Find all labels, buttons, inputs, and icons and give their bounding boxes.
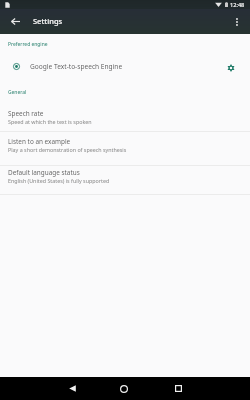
button[interactable]: More options <box>228 9 246 34</box>
button[interactable]: Default language status <box>0 165 250 193</box>
button[interactable]: Navigate up <box>3 9 27 34</box>
staticText: Preferred engine <box>8 41 48 48</box>
staticText: Speed at which the text is spoken <box>8 118 92 125</box>
button[interactable]: Engine settings <box>222 59 239 76</box>
staticText: Default language status <box>8 168 80 177</box>
button[interactable]: Back <box>58 377 86 400</box>
button[interactable]: Recent apps <box>164 377 192 400</box>
button[interactable]: Google Text-to-speech Engine <box>0 56 250 78</box>
staticText: 12:48 <box>230 1 245 9</box>
staticText: Google Text-to-speech Engine <box>30 62 123 71</box>
button[interactable]: Home <box>110 377 138 400</box>
button[interactable]: Listen to an example <box>0 134 250 162</box>
button[interactable]: Speech rate <box>0 106 250 134</box>
staticText: General <box>8 89 27 96</box>
staticText: Play a short demonstration of speech syn… <box>8 146 127 153</box>
staticText: Settings <box>33 16 63 26</box>
staticText: Speech rate <box>8 109 44 118</box>
staticText: English (United States) is fully support… <box>8 177 110 184</box>
staticText: Listen to an example <box>8 137 71 146</box>
